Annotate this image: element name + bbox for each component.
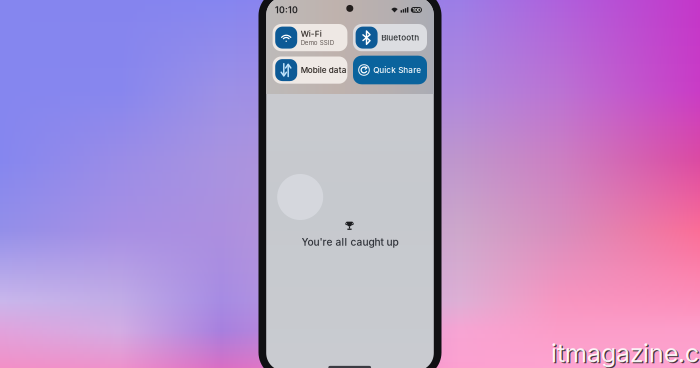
- button[interactable]: Quick Share: [353, 56, 427, 84]
- staticText: You're all caught up: [301, 236, 398, 248]
- staticText: Mobile data: [301, 65, 347, 75]
- staticText: Bluetooth: [381, 33, 419, 42]
- staticText: 100: [412, 7, 420, 13]
- button[interactable]: Wi-Fi: [273, 24, 347, 51]
- staticText: itmagazine.cc: [552, 339, 700, 368]
- staticText: 10:10: [275, 5, 298, 15]
- staticText: itmagazine.cc: [551, 338, 700, 368]
- staticText: Quick Share: [373, 65, 421, 75]
- button[interactable]: Bluetooth: [353, 24, 427, 51]
- staticText: Wi-Fi: [301, 29, 322, 39]
- staticText: Demo SSID: [301, 39, 334, 46]
- button[interactable]: Mobile data: [273, 56, 347, 84]
